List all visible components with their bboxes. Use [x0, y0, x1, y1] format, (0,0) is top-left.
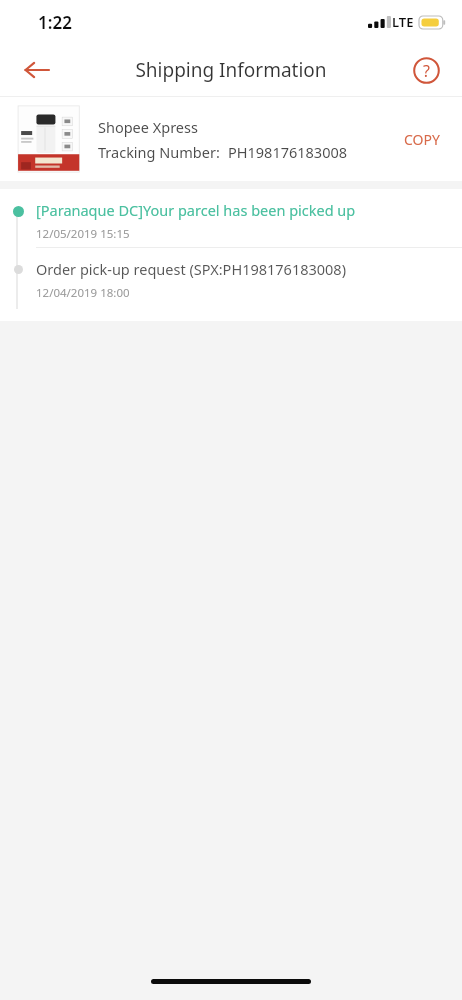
staticText: Tracking Number:: [98, 142, 220, 162]
staticText: Order pick-up request (SPX:PH19817618300…: [36, 259, 347, 279]
button[interactable]: Help: [404, 48, 448, 92]
button[interactable]: Back: [14, 47, 60, 93]
button[interactable]: Order pick-up request (SPX:PH19817618300…: [0, 248, 462, 306]
staticText: Shopee Xpress: [98, 117, 198, 137]
staticText: PH198176183008: [228, 142, 348, 162]
staticText: 12/05/2019 15:15: [36, 226, 130, 242]
staticText: ?: [423, 60, 430, 82]
button[interactable]: COPY: [394, 122, 450, 157]
staticText: [Paranaque DC]Your parcel has been picke…: [36, 200, 356, 220]
button[interactable]: [Paranaque DC]Your parcel has been picke…: [0, 189, 462, 248]
staticText: 12/04/2019 18:00: [36, 285, 130, 301]
staticText: 1:22: [38, 11, 72, 34]
staticText: LTE: [392, 13, 414, 31]
staticText: COPY: [404, 130, 440, 149]
button[interactable]: Shopee Xpress: [0, 97, 462, 181]
staticText: Shipping Information: [135, 57, 327, 83]
